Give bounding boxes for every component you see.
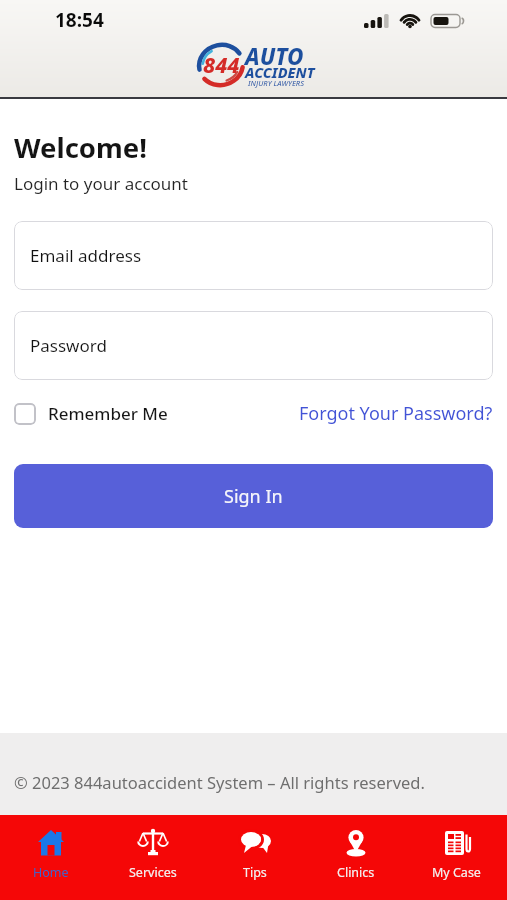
staticText: © 2023 844autoaccident System – All righ… bbox=[14, 771, 425, 793]
staticText: Clinics bbox=[337, 864, 375, 881]
staticText: Password bbox=[30, 334, 107, 357]
staticText: Sign In bbox=[224, 484, 283, 509]
staticText: AUTO bbox=[245, 41, 304, 72]
staticText: ACCIDENT bbox=[245, 62, 315, 82]
staticText: Remember Me bbox=[48, 402, 168, 425]
button[interactable]: Home bbox=[0, 815, 102, 900]
staticText: Welcome! bbox=[14, 129, 148, 166]
staticText: Home bbox=[33, 864, 69, 881]
staticText: My Case bbox=[432, 864, 481, 881]
staticText: Login to your account bbox=[14, 172, 188, 195]
staticText: 844 bbox=[203, 50, 240, 79]
staticText: 18:54 bbox=[55, 7, 104, 33]
button[interactable]: Email address bbox=[14, 221, 493, 290]
button[interactable]: Clinics bbox=[305, 815, 406, 900]
staticText: INJURY LAWYERS bbox=[248, 78, 305, 88]
button[interactable]: Sign In bbox=[14, 464, 493, 528]
button[interactable]: Password bbox=[14, 311, 493, 380]
button[interactable]: Services bbox=[102, 815, 204, 900]
staticText: Email address bbox=[30, 244, 142, 267]
button[interactable] bbox=[14, 403, 36, 425]
button[interactable]: Forgot Your Password? bbox=[299, 401, 493, 426]
staticText: Tips bbox=[243, 864, 267, 881]
button[interactable]: My Case bbox=[406, 815, 507, 900]
button[interactable]: Tips bbox=[204, 815, 305, 900]
staticText: Services bbox=[129, 864, 177, 881]
